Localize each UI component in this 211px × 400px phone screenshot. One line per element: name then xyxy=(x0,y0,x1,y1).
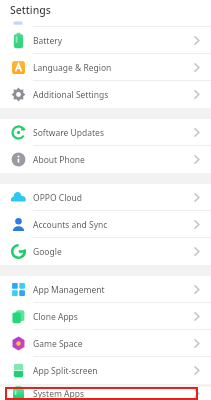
staticText: Battery xyxy=(33,35,63,47)
button[interactable]: About Phone xyxy=(0,146,211,173)
staticText: App Split-screen xyxy=(33,365,98,377)
staticText: Language & Region xyxy=(33,62,112,74)
staticText: OPPO Cloud xyxy=(33,192,82,204)
staticText: Accounts and Sync xyxy=(33,219,108,231)
staticText: About Phone xyxy=(33,154,85,166)
staticText: Clone Apps xyxy=(33,311,78,323)
button[interactable] xyxy=(0,19,211,27)
button[interactable]: System Apps xyxy=(0,387,211,400)
button[interactable]: Accounts and Sync xyxy=(0,211,211,238)
button[interactable]: Clone Apps xyxy=(0,303,211,330)
staticText: App Management xyxy=(33,284,105,296)
staticText: Google xyxy=(33,246,62,258)
button[interactable]: OPPO Cloud xyxy=(0,184,211,211)
staticText: Software Updates xyxy=(33,127,104,139)
button[interactable]: App Management xyxy=(0,276,211,303)
staticText: Additional Settings xyxy=(33,89,109,101)
button[interactable]: Game Space xyxy=(0,330,211,357)
button[interactable]: App Split-screen xyxy=(0,357,211,384)
button[interactable]: Additional Settings xyxy=(0,81,211,108)
other: System Apps highlighted xyxy=(5,387,198,400)
button[interactable]: Google xyxy=(0,238,211,265)
staticText: Game Space xyxy=(33,338,83,350)
button[interactable]: Battery xyxy=(0,27,211,54)
staticText: System Apps xyxy=(33,388,85,400)
button[interactable]: Language & Region xyxy=(0,54,211,81)
staticText: Settings xyxy=(10,3,51,17)
button[interactable]: Software Updates xyxy=(0,119,211,146)
